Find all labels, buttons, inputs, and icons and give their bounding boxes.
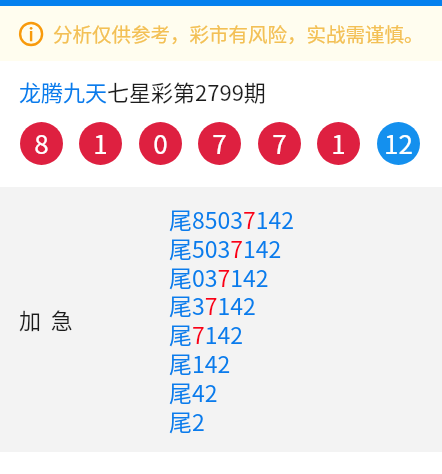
staticText: 7 (212, 124, 227, 162)
button[interactable]: 1 (317, 122, 360, 165)
other: Information (17, 20, 45, 48)
staticText: 1 (331, 124, 346, 162)
button[interactable]: 尾037142 (169, 260, 269, 293)
button[interactable]: Information (0, 6, 442, 61)
button[interactable]: 尾142 (169, 346, 231, 379)
button[interactable]: 1 (79, 122, 122, 165)
staticText: 0 (153, 124, 168, 162)
staticText: 7 (272, 124, 287, 162)
button[interactable]: 尾42 (169, 375, 218, 408)
button[interactable]: 0 (139, 122, 182, 165)
staticText: 加 急 (19, 303, 73, 335)
button[interactable]: 7 (198, 122, 241, 165)
staticText: 分析仅供参考，彩市有风险，实战需谨慎。 (53, 19, 424, 47)
button[interactable]: 尾2 (169, 404, 205, 437)
button[interactable]: 尾7142 (169, 317, 244, 350)
button[interactable]: 8 (20, 122, 63, 165)
button[interactable]: 尾37142 (169, 288, 256, 321)
staticText: 12 (384, 124, 413, 162)
staticText: 龙腾九天七星彩第2799期 (19, 75, 266, 107)
staticText: 1 (93, 124, 108, 162)
button[interactable]: 尾85037142 (169, 202, 295, 235)
button[interactable]: 尾5037142 (169, 231, 282, 264)
staticText: 8 (34, 124, 49, 162)
button[interactable]: 7 (258, 122, 301, 165)
button[interactable]: 12 (377, 122, 420, 165)
